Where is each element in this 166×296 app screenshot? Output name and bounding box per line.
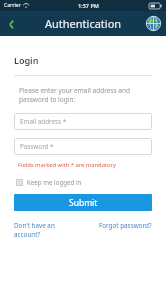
staticText: Password * bbox=[20, 142, 54, 151]
staticText: Keep me logged in bbox=[27, 178, 82, 186]
staticText: Fields marked with * are mandatory bbox=[18, 161, 116, 169]
button[interactable]: Don't have an account? bbox=[14, 221, 72, 239]
staticText: Email address * bbox=[20, 117, 67, 126]
staticText: Authentication bbox=[45, 16, 122, 31]
staticText: Carrier bbox=[4, 2, 21, 9]
staticText: 1:57 PM bbox=[78, 2, 100, 9]
button[interactable]: Keep me logged in bbox=[16, 178, 82, 186]
staticText: Login bbox=[14, 54, 39, 66]
button[interactable]: Password * bbox=[14, 138, 152, 155]
button[interactable]: Forgot password? bbox=[99, 221, 152, 230]
button[interactable]: Email address * bbox=[14, 113, 152, 130]
staticText: Don't have an account? bbox=[14, 221, 72, 239]
staticText: Submit bbox=[69, 197, 98, 209]
button[interactable]: Back bbox=[3, 16, 19, 32]
staticText: Please enter your email address and pass… bbox=[19, 86, 147, 104]
staticText: Forgot password? bbox=[99, 221, 152, 230]
button[interactable]: Submit bbox=[14, 194, 152, 211]
button[interactable]: Language bbox=[145, 15, 162, 32]
